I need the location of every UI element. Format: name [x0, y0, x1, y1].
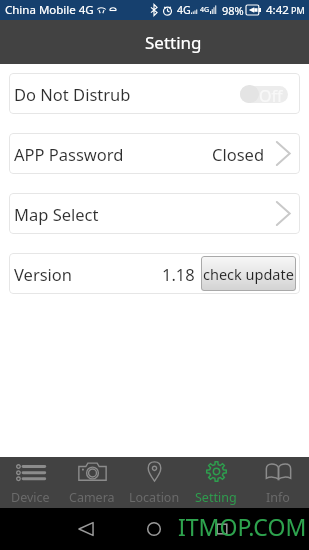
staticText: check update: [203, 264, 294, 284]
button[interactable]: Home: [136, 511, 172, 547]
button[interactable]: Info: [247, 457, 309, 508]
staticText: Info: [266, 489, 290, 506]
staticText: 4:42: [266, 2, 289, 18]
button[interactable]: Do Not Distrub: [9, 73, 300, 114]
button[interactable]: Device: [0, 457, 61, 508]
staticText: China Mobile 4G: [5, 2, 94, 18]
button[interactable]: Setting: [185, 457, 247, 508]
staticText: Setting: [145, 31, 202, 54]
staticText: 1.18: [162, 263, 195, 285]
staticText: 98%: [222, 3, 244, 18]
button[interactable]: Map Select: [9, 193, 300, 234]
staticText: Off: [259, 85, 283, 103]
staticText: APP Password: [14, 143, 124, 165]
staticText: ITMOP.COM: [178, 511, 307, 542]
staticText: Setting: [195, 489, 237, 506]
button[interactable]: check update: [201, 256, 296, 291]
staticText: Map Select: [14, 203, 99, 225]
button[interactable]: Recent apps: [204, 511, 240, 547]
staticText: Device: [11, 489, 50, 506]
staticText: Version: [14, 263, 73, 285]
staticText: 4G: [200, 5, 210, 15]
button[interactable]: APP Password: [9, 133, 300, 174]
button[interactable]: Back: [68, 511, 104, 547]
staticText: Closed: [212, 143, 265, 165]
staticText: PM: [291, 4, 305, 16]
button[interactable]: Location: [123, 457, 185, 508]
button[interactable]: Version: [9, 253, 300, 294]
button[interactable]: Camera: [61, 457, 123, 508]
button[interactable]: Do Not Disturb toggle, off: [240, 85, 288, 103]
staticText: Location: [129, 489, 180, 506]
staticText: 4G: [177, 3, 191, 17]
staticText: Do Not Distrub: [14, 83, 131, 105]
staticText: Camera: [69, 489, 115, 506]
